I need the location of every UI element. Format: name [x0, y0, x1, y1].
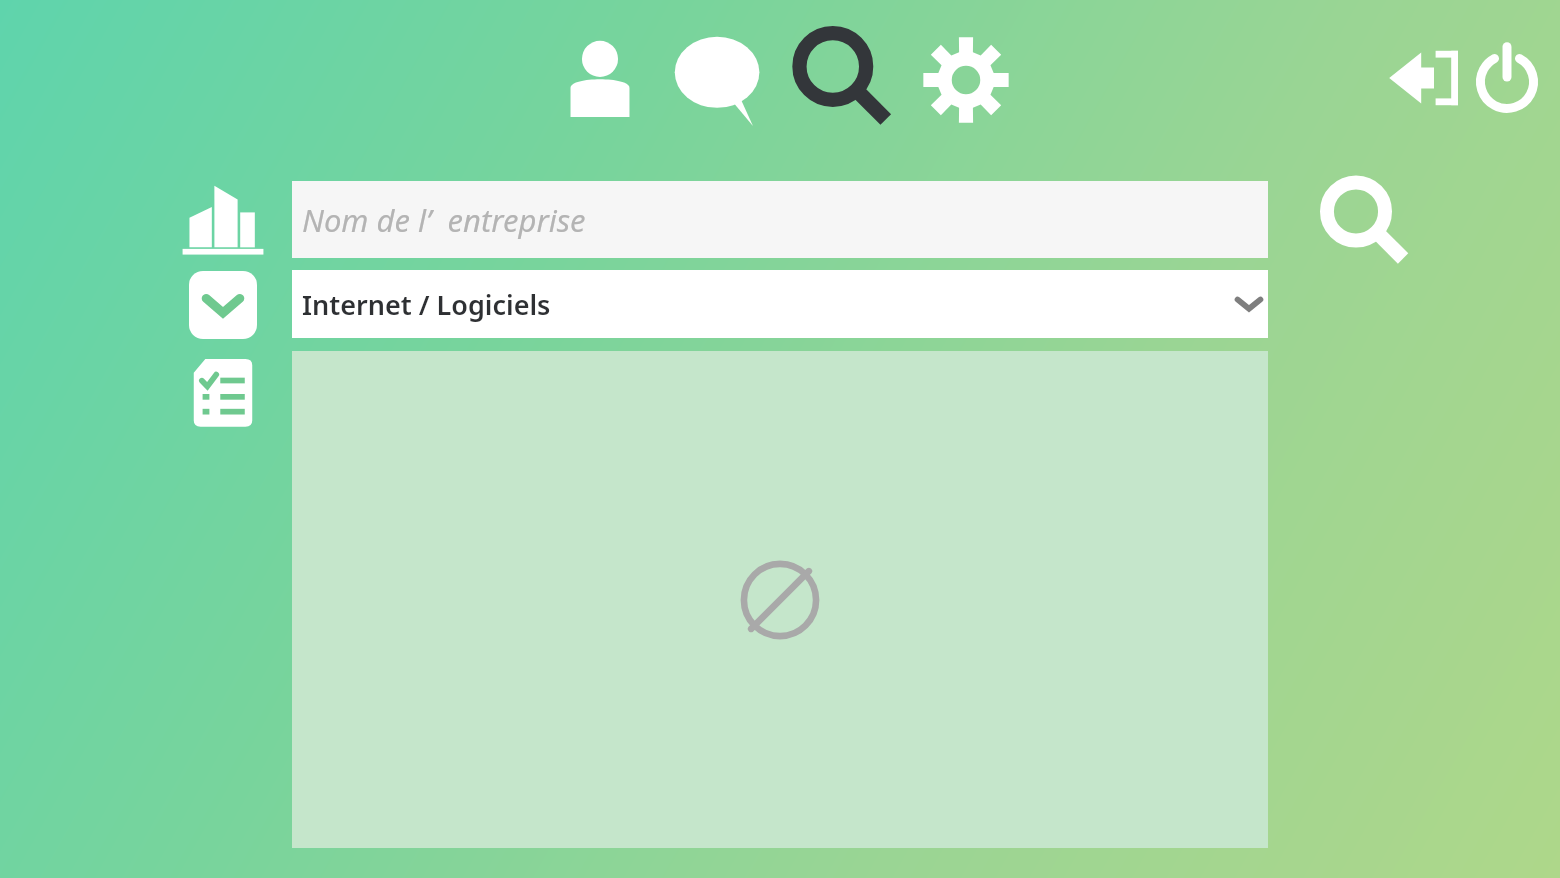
button[interactable]: Expand [189, 271, 257, 339]
button[interactable]: Nom de l’ entreprise [292, 181, 1268, 258]
button[interactable]: Search [796, 30, 888, 126]
button[interactable]: Companies [180, 182, 266, 258]
button[interactable]: Search companies [1320, 178, 1410, 266]
button[interactable]: Profile [556, 36, 644, 124]
button[interactable]: Power [1468, 36, 1546, 118]
staticText: Nom de l’ entreprise [302, 199, 586, 241]
button[interactable]: Messages [672, 32, 764, 128]
button[interactable]: Internet / Logiciels [292, 270, 1268, 338]
staticText: Internet / Logiciels [302, 286, 551, 323]
button[interactable]: Log out [1386, 38, 1466, 118]
button[interactable]: Tasks [189, 356, 257, 432]
button[interactable]: Settings [920, 33, 1012, 127]
